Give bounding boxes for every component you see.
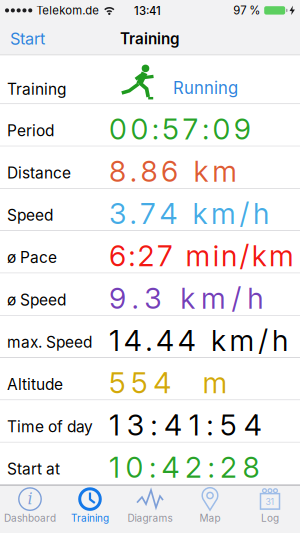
staticText: m <box>211 196 236 231</box>
staticText: 7 <box>183 112 199 146</box>
staticText: Distance <box>7 163 71 182</box>
staticText: : <box>202 112 209 146</box>
staticText <box>176 365 184 400</box>
staticText: 1 <box>109 408 120 442</box>
staticText: Start at <box>7 460 60 478</box>
button[interactable]: Training <box>0 55 300 103</box>
staticText: Log <box>261 512 279 524</box>
staticText: 3 <box>127 408 144 442</box>
staticText: 0 <box>130 112 148 146</box>
staticText <box>189 365 197 400</box>
staticText: m <box>185 239 210 273</box>
staticText: : <box>206 408 213 442</box>
staticText: 97 % <box>233 3 260 17</box>
staticText: m <box>230 323 255 358</box>
staticText: Time of day <box>7 417 93 436</box>
staticText: 6 <box>109 239 126 273</box>
staticText: Map <box>199 512 220 524</box>
staticText: 3 <box>109 196 126 231</box>
staticText: 8 <box>243 450 260 485</box>
staticText: . <box>145 323 152 358</box>
staticText: 5 <box>131 365 148 400</box>
staticText: m <box>212 154 237 189</box>
staticText: 4 <box>153 365 171 400</box>
staticText: Telekom.de <box>36 3 99 17</box>
staticText: ø Pace <box>7 248 57 267</box>
staticText: 13:41 <box>134 4 161 18</box>
staticText: 8 <box>140 154 157 189</box>
staticText: : <box>150 408 157 442</box>
staticText: . <box>130 154 137 189</box>
button[interactable]: i <box>0 486 60 533</box>
staticText: 0 <box>125 450 143 485</box>
staticText: Dashboard <box>4 512 56 524</box>
staticText: : <box>128 239 135 273</box>
staticText: Speed <box>7 206 53 224</box>
staticText: . <box>129 196 136 231</box>
staticText: 5 <box>109 365 126 400</box>
staticText: . <box>132 281 139 316</box>
staticText: 1 <box>189 408 200 442</box>
button[interactable]: Map <box>180 486 240 533</box>
staticText: m <box>202 365 227 400</box>
staticText: 9 <box>109 281 126 316</box>
staticText: 0 <box>212 112 230 146</box>
button[interactable]: 31 <box>240 486 300 533</box>
staticText: : <box>207 450 214 485</box>
staticText: 6 <box>161 154 178 189</box>
staticText: k <box>252 239 267 273</box>
staticText: n <box>221 239 237 273</box>
staticText: 4 <box>161 450 179 485</box>
staticText: k <box>192 196 207 231</box>
staticText <box>181 196 189 231</box>
staticText: max. Speed <box>7 333 92 351</box>
staticText: Start <box>10 29 45 49</box>
staticText: 4 <box>156 323 174 358</box>
staticText: / <box>258 323 268 358</box>
staticText: Training <box>120 29 180 48</box>
staticText: : <box>149 450 156 485</box>
staticText: 5 <box>162 112 179 146</box>
staticText: Running <box>173 78 238 98</box>
staticText: m <box>269 239 294 273</box>
staticText: h <box>272 323 288 358</box>
staticText: 8 <box>109 154 126 189</box>
staticText: m <box>201 281 226 316</box>
staticText <box>199 323 207 358</box>
button[interactable]: Start <box>0 29 45 49</box>
staticText: ø Speed <box>7 290 66 309</box>
staticText: 0 <box>109 112 127 146</box>
staticText: 7 <box>140 196 156 231</box>
staticText: Training <box>7 80 66 98</box>
staticText: 1 <box>109 450 120 485</box>
staticText: 2 <box>138 239 155 273</box>
staticText: h <box>253 196 269 231</box>
staticText: i <box>213 239 219 273</box>
staticText: 1 <box>109 323 120 358</box>
staticText: k <box>211 323 226 358</box>
staticText: 4 <box>178 323 196 358</box>
staticText: : <box>152 112 159 146</box>
staticText: 2 <box>185 450 202 485</box>
staticText <box>167 281 175 316</box>
staticText: / <box>231 281 241 316</box>
staticText: Altitude <box>7 375 63 394</box>
staticText: h <box>247 281 263 316</box>
staticText: / <box>239 196 249 231</box>
staticText: 31 <box>266 497 275 507</box>
staticText: Diagrams <box>127 512 172 524</box>
button[interactable]: Training <box>60 486 120 533</box>
staticText: / <box>239 239 249 273</box>
staticText: 5 <box>220 408 237 442</box>
staticText <box>182 154 190 189</box>
staticText: k <box>180 281 195 316</box>
staticText: k <box>193 154 208 189</box>
staticText: 3 <box>144 281 161 316</box>
staticText: 2 <box>220 450 237 485</box>
staticText: 4 <box>164 408 182 442</box>
staticText: 7 <box>157 239 173 273</box>
staticText: 4 <box>244 408 262 442</box>
button[interactable]: Diagrams <box>120 486 180 533</box>
staticText: Training <box>71 512 109 524</box>
